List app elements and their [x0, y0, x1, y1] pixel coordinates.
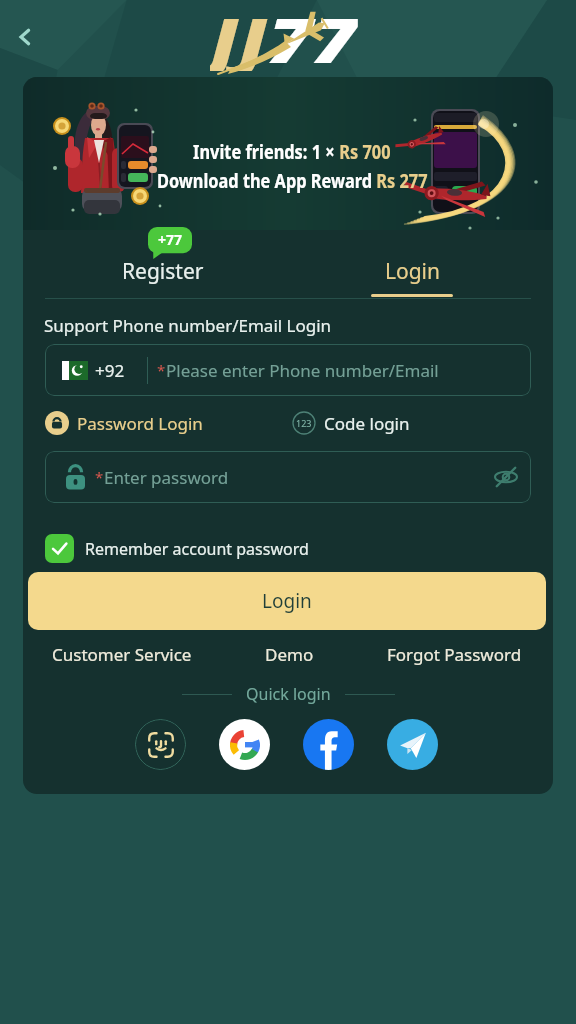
staticText: Rs 700 [339, 139, 391, 165]
staticText: Support Phone number/Email Login [44, 314, 332, 337]
staticText: Login [262, 588, 312, 614]
staticText: Remember account password [85, 538, 309, 560]
button[interactable]: Sign in with Facebook [303, 719, 354, 770]
staticText: * [157, 360, 166, 380]
staticText: Download the App Reward [157, 168, 376, 194]
staticText: Enter password [104, 466, 229, 489]
staticText: Please enter Phone number/Email [166, 359, 439, 382]
staticText: * [95, 467, 104, 487]
button[interactable]: Login [28, 572, 546, 630]
button[interactable]: Back [6, 18, 44, 56]
staticText: JJ [210, 0, 268, 71]
button[interactable]: 123 [292, 411, 410, 435]
button[interactable]: Sign in with Google [219, 719, 270, 770]
staticText: +77 [158, 230, 183, 249]
button[interactable]: Demo [265, 643, 314, 666]
staticText: +92 [95, 359, 125, 382]
button[interactable]: Password Login [45, 411, 203, 435]
button[interactable]: * [45, 451, 531, 503]
staticText: Register [122, 257, 204, 286]
button[interactable]: Sign in with Telegram [387, 719, 438, 770]
staticText: Login [385, 257, 441, 286]
button[interactable]: Customer Service [52, 643, 192, 666]
staticText: Invite friends: 1 × [193, 139, 339, 165]
button[interactable]: Show password [489, 460, 523, 494]
staticText: 77 [268, 0, 358, 71]
button[interactable]: Login [359, 218, 467, 286]
button[interactable]: Face ID login [135, 719, 186, 770]
staticText: 123 [296, 417, 312, 429]
staticText: Password Login [77, 412, 203, 435]
button[interactable]: Remember account password [45, 534, 309, 563]
button[interactable]: +92 [45, 344, 531, 396]
button[interactable]: Forgot Password [387, 643, 522, 666]
staticText: Rs 277 [376, 168, 428, 194]
staticText: Quick login [246, 683, 331, 705]
button[interactable]: Register [109, 218, 217, 286]
staticText: Code login [324, 412, 410, 435]
